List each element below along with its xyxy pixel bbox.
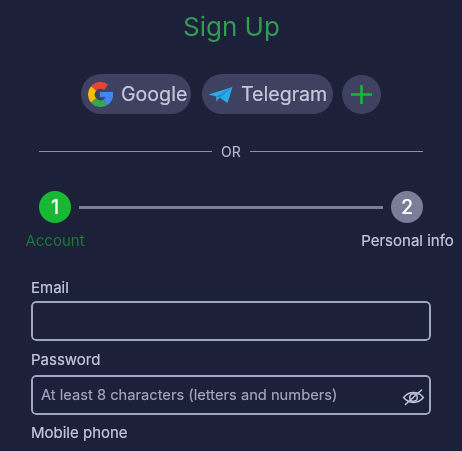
staticText: 1 xyxy=(51,195,60,219)
staticText: 2 xyxy=(401,195,414,219)
staticText: At least 8 characters (letters and numbe… xyxy=(41,386,338,404)
staticText: Sign Up xyxy=(183,11,280,42)
button[interactable]: At least 8 characters (letters and numbe… xyxy=(31,375,431,415)
button[interactable]: 2 xyxy=(391,191,423,223)
staticText: Account xyxy=(25,231,85,249)
staticText: Email xyxy=(31,278,69,296)
staticText: Mobile phone xyxy=(31,423,128,441)
staticText: Telegram xyxy=(241,82,328,106)
button[interactable]: More sign up options xyxy=(342,75,381,114)
button[interactable]: 1 xyxy=(39,191,71,223)
button[interactable]: Telegram xyxy=(202,74,333,114)
button[interactable]: Show password xyxy=(403,388,424,403)
staticText: Google xyxy=(121,82,188,106)
button[interactable] xyxy=(31,301,431,341)
button[interactable]: Google xyxy=(81,74,191,114)
staticText: Password xyxy=(31,350,101,368)
staticText: OR xyxy=(221,143,241,160)
staticText: Personal info xyxy=(361,231,454,249)
